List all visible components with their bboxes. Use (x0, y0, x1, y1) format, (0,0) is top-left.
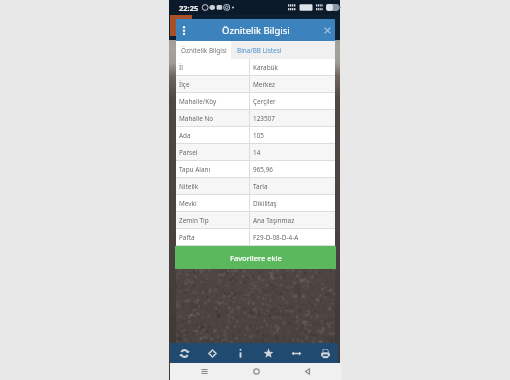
button[interactable]: Home (238, 363, 274, 380)
staticText: 123507 (253, 114, 275, 123)
button[interactable]: Close (320, 19, 335, 41)
button[interactable]: Mahalle No (176, 110, 335, 126)
staticText: Zemin Tip (179, 216, 209, 225)
button[interactable]: Pafta (176, 229, 335, 245)
staticText: Dikilitaş (253, 199, 277, 208)
staticText: Tapu Alanı (179, 165, 211, 174)
button[interactable]: More options (176, 19, 191, 41)
staticText: F29-D-08-D-4-A (253, 233, 299, 242)
button[interactable]: Back (289, 363, 325, 380)
button[interactable]: Mevki (176, 195, 335, 211)
staticText: Favorilere ekle (230, 253, 282, 263)
button[interactable]: Tapu Alanı (176, 161, 335, 177)
button[interactable]: Zemin Tip (176, 212, 335, 228)
staticText: Mahalle No (179, 114, 214, 123)
staticText: Karabük (253, 63, 278, 72)
staticText: Parsel (179, 148, 198, 157)
staticText: Öznitelik Bilgisi (181, 46, 227, 55)
staticText: Ada (179, 131, 191, 140)
staticText: 965,96 (253, 165, 273, 174)
button[interactable]: Öznitelik Bilgisi (176, 41, 231, 59)
button[interactable]: Favorilere ekle (175, 246, 336, 269)
button[interactable]: Ada (176, 127, 335, 143)
button[interactable]: Refresh (171, 343, 197, 363)
button[interactable]: Mahalle/Köy (176, 93, 335, 109)
staticText: 22:25 (179, 3, 199, 13)
button[interactable]: İlçe (176, 76, 335, 92)
button[interactable]: Recents (186, 363, 222, 380)
staticText: Öznitelik Bilgisi (222, 24, 290, 37)
staticText: 105 (253, 131, 264, 140)
button[interactable]: Measure (283, 343, 309, 363)
button[interactable]: Favorite (255, 343, 281, 363)
button[interactable]: İl (176, 59, 335, 75)
staticText: İl (179, 63, 183, 72)
staticText: Bina/BB Listesi (237, 46, 282, 55)
button[interactable]: Print (312, 343, 338, 363)
button[interactable]: Bina/BB Listesi (231, 41, 288, 59)
staticText: 14 (253, 148, 261, 157)
button[interactable]: Info (227, 343, 253, 363)
staticText: Ana Taşınmaz (253, 216, 295, 225)
staticText: Mahalle/Köy (179, 97, 217, 106)
staticText: Çerçiler (253, 97, 276, 106)
button[interactable]: Locate (199, 343, 225, 363)
staticText: Mevki (179, 199, 197, 208)
staticText: Pafta (179, 233, 195, 242)
button[interactable]: Parsel (176, 144, 335, 160)
staticText: İlçe (179, 80, 190, 89)
button[interactable]: Nitelik (176, 178, 335, 194)
staticText: Tarla (253, 182, 268, 191)
staticText: Nitelik (179, 182, 199, 191)
staticText: Merkez (253, 80, 275, 89)
